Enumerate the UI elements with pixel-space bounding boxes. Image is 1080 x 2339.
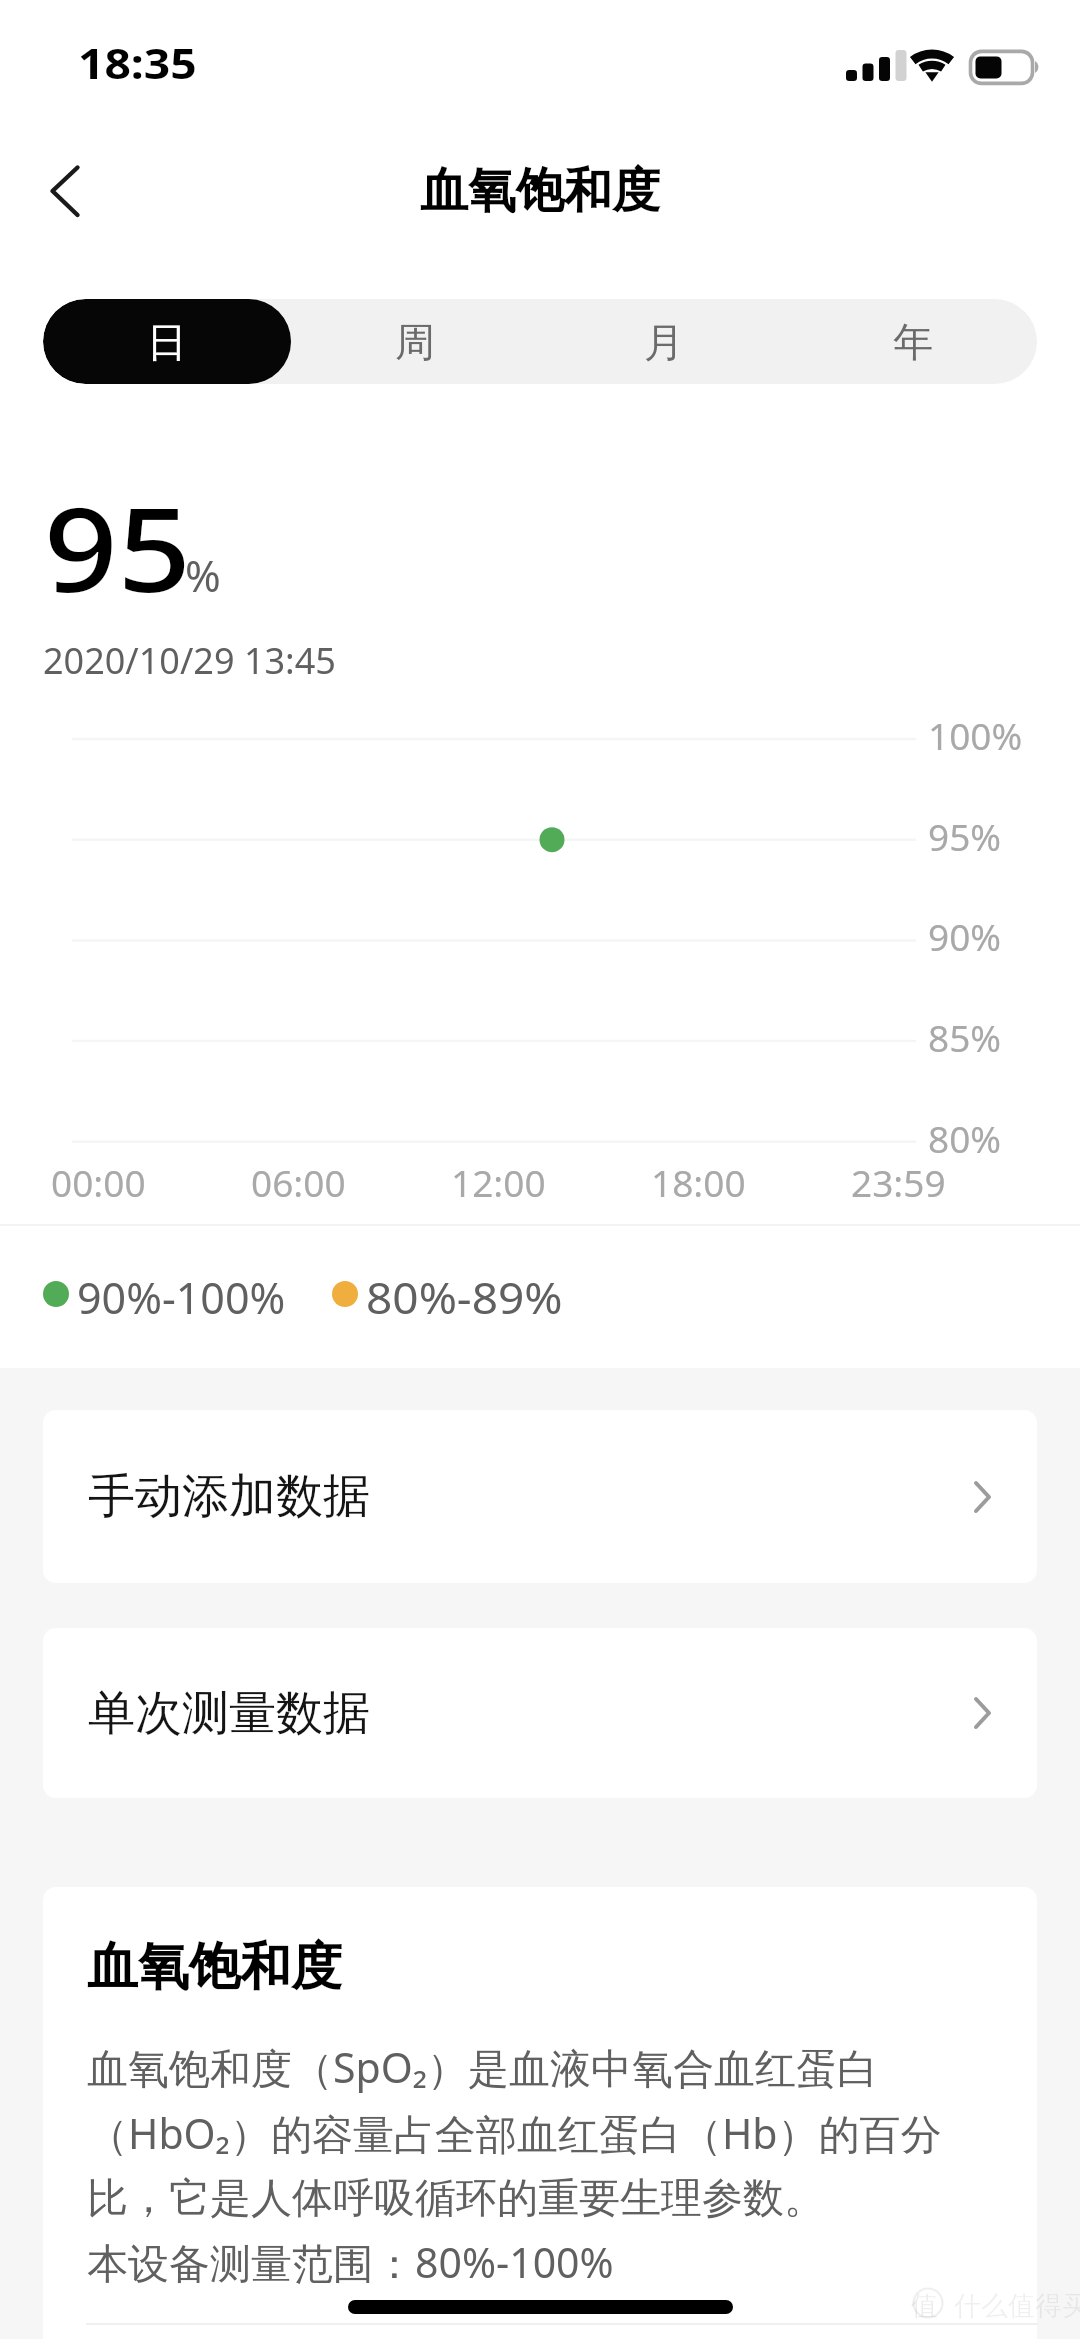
staticText: 06:00 xyxy=(251,1157,346,1207)
staticText: 血氧饱和度（SpO₂）是血液中氧合血红蛋白 （HbO₂）的容量占全部血红蛋白（H… xyxy=(87,2039,942,2290)
button[interactable]: 单次测量数据 xyxy=(43,1628,1037,1798)
button[interactable]: Back xyxy=(20,146,110,236)
button[interactable]: 月 xyxy=(539,299,788,384)
staticText: 18:00 xyxy=(651,1157,746,1207)
staticText: 95% xyxy=(928,811,1002,861)
staticText: 值 xyxy=(911,2289,938,2323)
button[interactable]: 日 xyxy=(43,299,291,384)
staticText: 23:59 xyxy=(851,1157,946,1207)
staticText: 手动添加数据 xyxy=(88,1467,370,1526)
staticText: % xyxy=(185,546,221,605)
staticText: 血氧饱和度 xyxy=(87,1935,342,1999)
staticText: 18:35 xyxy=(78,34,197,91)
staticText: 月 xyxy=(644,317,684,367)
staticText: 12:00 xyxy=(451,1157,546,1207)
staticText: 90%-100% xyxy=(77,1268,286,1320)
staticText: 85% xyxy=(928,1012,1002,1062)
button[interactable]: 年 xyxy=(788,299,1037,384)
staticText: 周 xyxy=(395,317,435,367)
staticText: 80% xyxy=(928,1113,1002,1163)
staticText: 100% xyxy=(928,710,1023,760)
staticText: 单次测量数据 xyxy=(88,1684,370,1743)
button[interactable]: 手动添加数据 xyxy=(43,1410,1037,1583)
staticText: 年 xyxy=(893,317,933,367)
staticText: 日 xyxy=(147,317,187,367)
staticText: 00:00 xyxy=(51,1157,146,1207)
staticText: 血氧饱和度 xyxy=(420,161,660,221)
staticText: 80%-89% xyxy=(366,1268,563,1320)
staticText: 2020/10/29 13:45 xyxy=(43,636,336,685)
staticText: 90% xyxy=(928,911,1002,961)
staticText: 95 xyxy=(44,467,191,626)
button[interactable]: 周 xyxy=(291,299,539,384)
staticText: 什么值得买 xyxy=(954,2289,1080,2323)
